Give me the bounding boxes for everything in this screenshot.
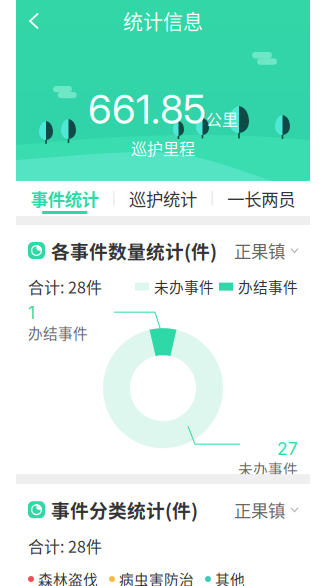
staticText: 1: [28, 302, 35, 323]
staticText: 事件分类统计(件): [51, 496, 198, 523]
staticText: 各事件数量统计(件): [51, 237, 217, 264]
staticText: 统计信息: [123, 6, 203, 35]
staticText: 正果镇: [234, 238, 285, 263]
button[interactable]: 正果镇: [234, 497, 298, 522]
staticText: 合计: 28件: [28, 534, 102, 557]
staticText: 办结事件: [28, 322, 88, 343]
staticText: 病虫害防治: [119, 568, 194, 586]
staticText: 事件统计: [31, 186, 99, 211]
button[interactable]: 一长两员: [213, 181, 310, 216]
button[interactable]: 巡护统计: [114, 181, 212, 216]
staticText: 未办事件: [154, 276, 214, 297]
button[interactable]: 事件统计: [16, 181, 113, 216]
staticText: 27: [277, 438, 298, 459]
staticText: 巡护里程: [131, 136, 195, 160]
staticText: 661.85: [88, 85, 206, 133]
staticText: 办结事件: [238, 276, 298, 297]
staticText: 公里: [206, 107, 238, 130]
staticText: 一长两员: [227, 186, 295, 211]
staticText: 合计: 28件: [28, 275, 102, 298]
staticText: 巡护统计: [129, 186, 197, 211]
staticText: 其他: [215, 568, 245, 586]
staticText: 森林盗伐: [38, 568, 98, 586]
button[interactable]: 正果镇: [234, 238, 298, 263]
button[interactable]: Back: [16, 6, 48, 36]
staticText: 未办事件: [238, 458, 298, 479]
staticText: 正果镇: [234, 497, 285, 522]
